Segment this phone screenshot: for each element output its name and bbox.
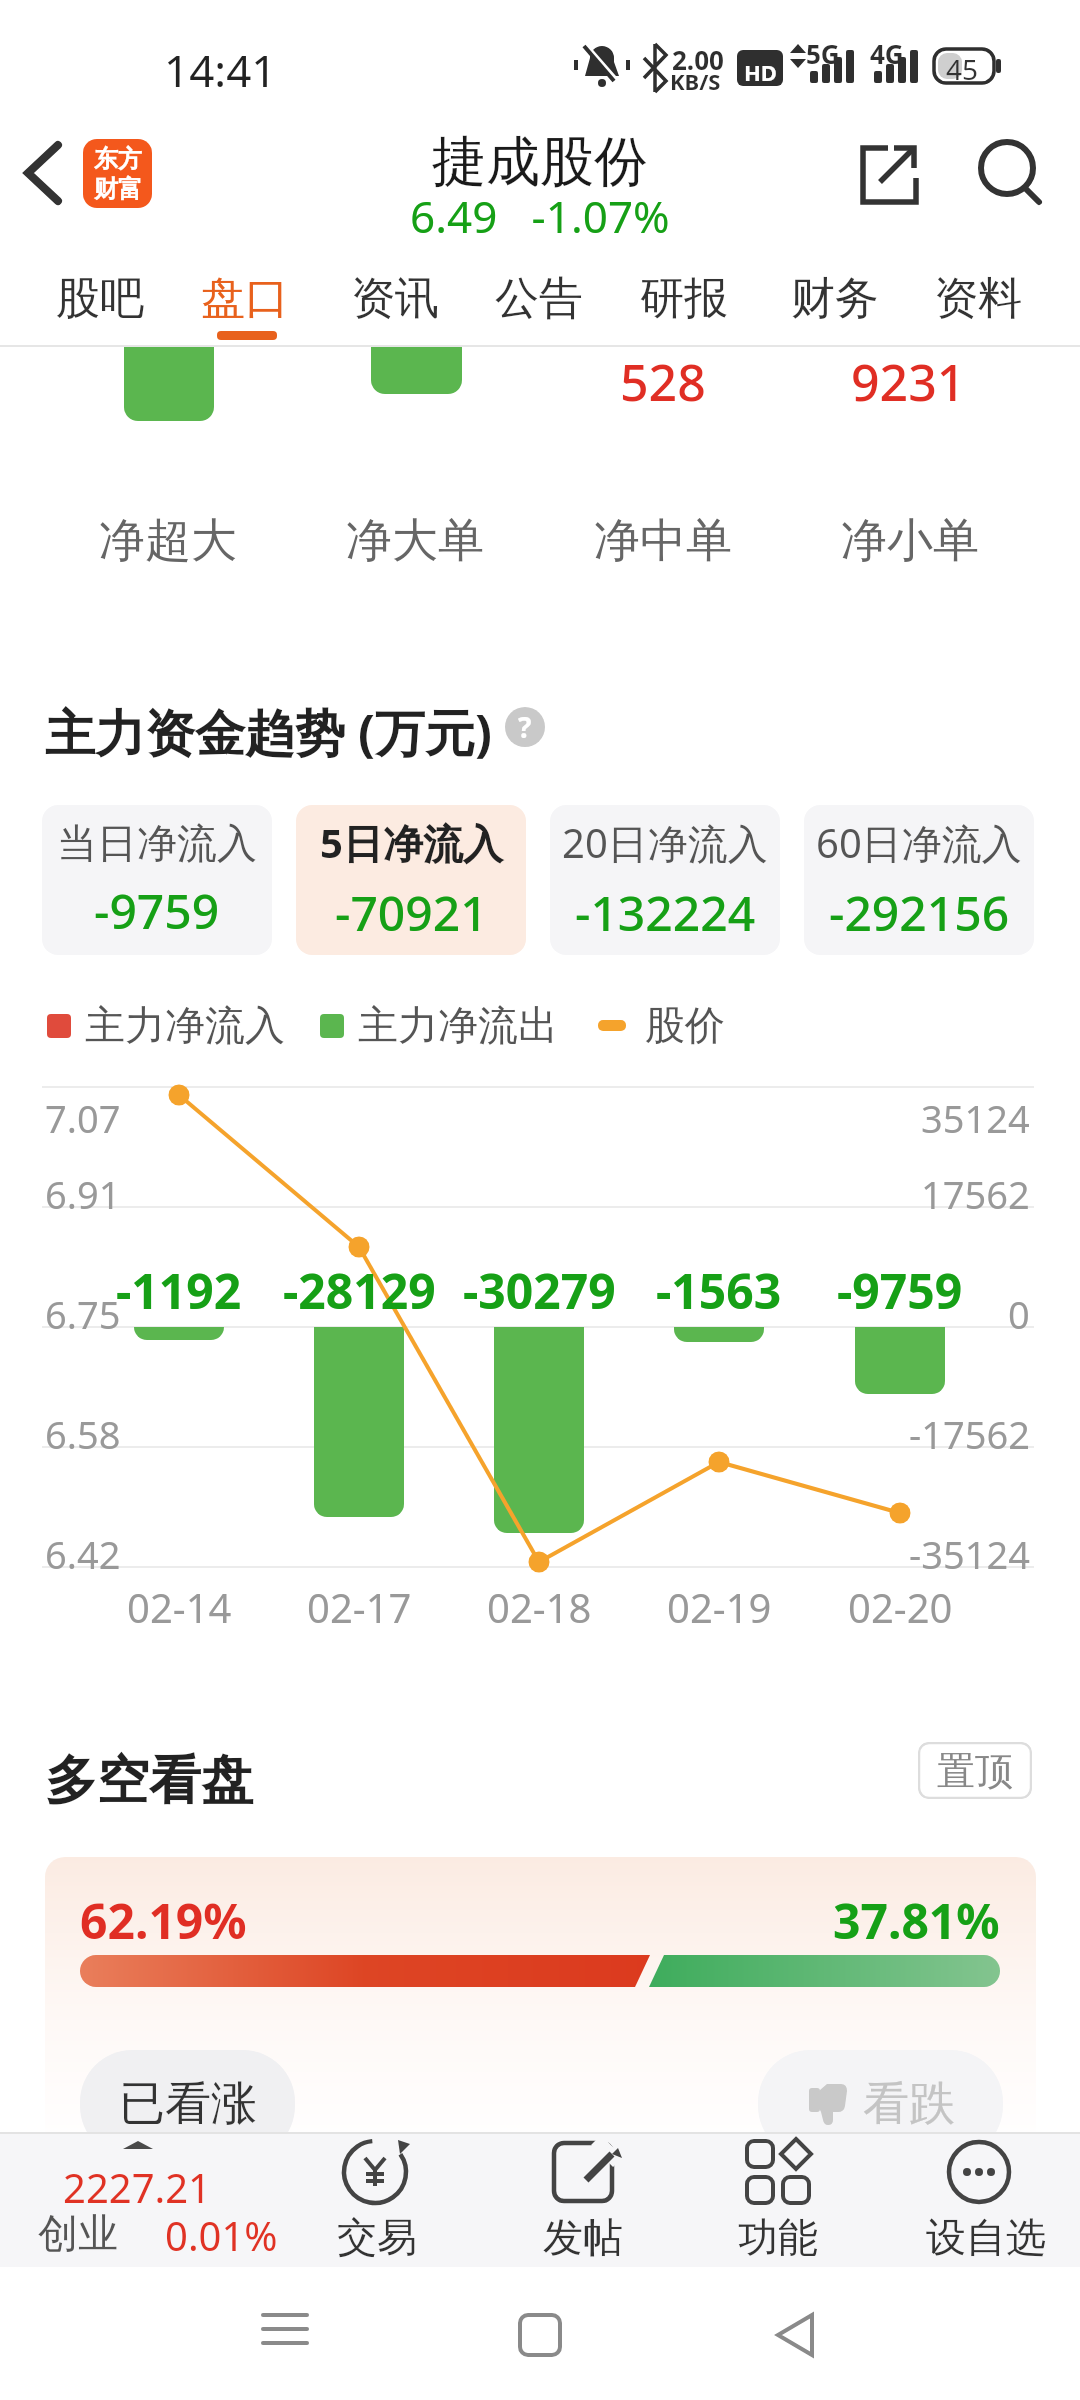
staticText: 财务: [791, 271, 879, 326]
staticText: 已看涨: [119, 2075, 257, 2133]
staticText: 0.01%: [165, 2208, 278, 2262]
staticText: 17562: [921, 1168, 1030, 1220]
staticText: 60日净流入: [816, 815, 1022, 870]
staticText: 6.91: [45, 1168, 121, 1220]
staticText: 45: [946, 50, 979, 88]
staticText: 02-18: [487, 1580, 592, 1634]
staticText: 盘口: [201, 271, 289, 326]
staticText: 净中单: [594, 512, 732, 570]
staticText: 资料: [934, 271, 1022, 326]
staticText: 0: [1008, 1288, 1030, 1340]
staticText: 6.49 -1.07%: [410, 186, 670, 246]
staticText: 5G: [806, 36, 840, 71]
staticText: 设自选: [926, 2212, 1046, 2262]
staticText: 公告: [495, 271, 583, 326]
staticText: 主力净流入: [85, 1000, 285, 1050]
button[interactable]: 资讯: [335, 258, 455, 338]
button[interactable]: [498, 2138, 668, 2263]
staticText: -70921: [335, 880, 488, 945]
staticText: -9759: [837, 1258, 963, 1323]
button[interactable]: 研报: [624, 258, 744, 338]
staticText: -9759: [94, 878, 220, 943]
staticText: 当日净流入: [57, 818, 257, 868]
staticText: 置顶: [937, 1747, 1013, 1795]
staticText: -132224: [575, 880, 756, 945]
button[interactable]: [850, 140, 922, 212]
staticText: 多空看盘: [45, 1748, 253, 1814]
staticText: 股吧: [56, 271, 144, 326]
staticText: 7.07: [45, 1092, 121, 1144]
staticText: KB/S: [670, 66, 721, 96]
staticText: 研报: [640, 271, 728, 326]
staticText: 股价: [645, 1000, 725, 1050]
staticText: 02-17: [307, 1580, 412, 1634]
button[interactable]: 盘口: [185, 258, 305, 338]
staticText: 创业: [38, 2208, 118, 2258]
staticText: HD: [744, 57, 777, 87]
button[interactable]: [693, 2138, 863, 2263]
staticText: 37.81%: [833, 1888, 1000, 1953]
button[interactable]: [292, 2138, 462, 2263]
staticText: 6.42: [45, 1528, 121, 1580]
button[interactable]: [20, 2140, 270, 2260]
button[interactable]: 股吧: [40, 258, 160, 338]
staticText: 捷成股份: [432, 128, 648, 196]
button[interactable]: 资料: [918, 258, 1038, 338]
staticText: 14:41: [164, 40, 277, 100]
button[interactable]: [10, 130, 80, 220]
staticText: 2.00: [672, 42, 724, 77]
button[interactable]: 当日净流入: [42, 805, 272, 955]
staticText: 发帖: [543, 2212, 623, 2262]
staticText: 5日净流入: [320, 815, 503, 870]
button[interactable]: 看跌: [758, 2050, 1003, 2158]
staticText: 看跌: [863, 2075, 955, 2133]
staticText: 528: [620, 348, 706, 416]
button[interactable]: 置顶: [918, 1742, 1032, 1799]
staticText: -35124: [909, 1528, 1030, 1580]
button[interactable]: 5日净流入: [296, 805, 526, 955]
staticText: -292156: [829, 880, 1010, 945]
staticText: 62.19%: [80, 1888, 247, 1953]
button[interactable]: 已看涨: [80, 2050, 295, 2158]
staticText: -30279: [463, 1258, 616, 1323]
staticText: -17562: [909, 1408, 1030, 1460]
button[interactable]: 20日净流入: [550, 805, 780, 955]
button[interactable]: [975, 138, 1047, 210]
staticText: -28129: [283, 1258, 436, 1323]
staticText: 功能: [738, 2212, 818, 2262]
staticText: 02-20: [848, 1580, 953, 1634]
staticText: 6.58: [45, 1408, 121, 1460]
staticText: 6.75: [45, 1288, 121, 1340]
button[interactable]: 东方: [83, 139, 152, 208]
staticText: 4G: [870, 36, 904, 71]
staticText: 02-19: [667, 1580, 772, 1634]
staticText: 20日净流入: [562, 815, 768, 870]
staticText: 35124: [921, 1092, 1030, 1144]
staticText: 主力资金趋势 (万元): [45, 698, 492, 766]
staticText: 净小单: [841, 512, 979, 570]
button[interactable]: 财务: [775, 258, 895, 338]
staticText: 净大单: [346, 512, 484, 570]
staticText: 2227.21: [63, 2160, 211, 2214]
staticText: 主力净流出: [358, 1000, 558, 1050]
staticText: -1192: [116, 1258, 242, 1323]
staticText: 9231: [851, 348, 966, 416]
staticText: 交易: [337, 2212, 417, 2262]
staticText: 净超大: [99, 512, 237, 570]
staticText: 东方: [94, 144, 142, 174]
staticText: 资讯: [351, 271, 439, 326]
staticText: ?: [518, 708, 532, 746]
button[interactable]: 公告: [479, 258, 599, 338]
staticText: 财富: [94, 174, 142, 204]
button[interactable]: [901, 2138, 1071, 2263]
staticText: -1563: [656, 1258, 782, 1323]
button[interactable]: ?: [505, 707, 545, 747]
button[interactable]: 60日净流入: [804, 805, 1034, 955]
staticText: 02-14: [127, 1580, 232, 1634]
